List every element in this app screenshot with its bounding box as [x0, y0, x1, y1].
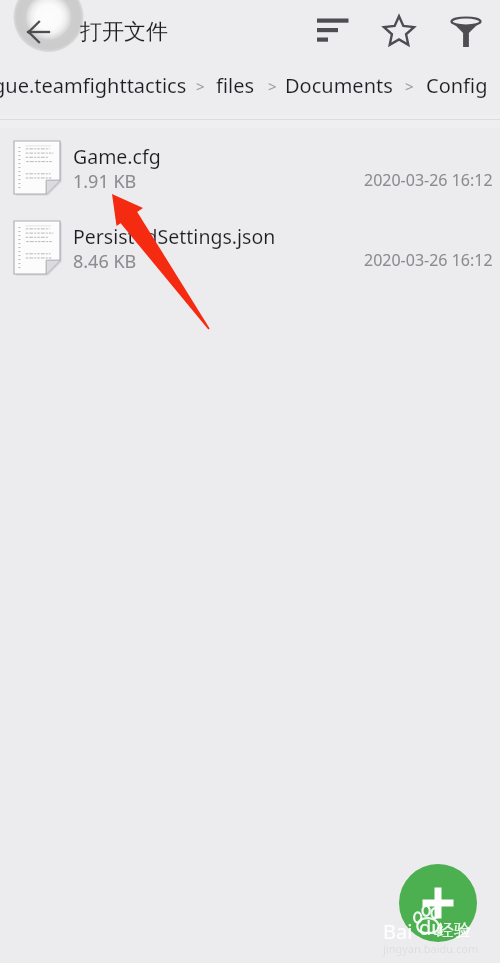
staticText: Config: [426, 72, 488, 99]
staticText: Game.cfg: [73, 143, 161, 170]
button[interactable]: gue.teamfighttactics: [0, 64, 187, 107]
staticText: 经验: [437, 920, 471, 941]
button[interactable]: Documents: [285, 64, 393, 107]
staticText: >: [196, 76, 205, 96]
staticText: 2020-03-26 16:12: [364, 249, 493, 271]
staticText: 打开文件: [80, 18, 168, 46]
button[interactable]: Game.cfg: [0, 128, 500, 208]
button[interactable]: PersistedSettings.json: [0, 208, 500, 288]
button[interactable]: Add: [399, 864, 477, 942]
staticText: gue.teamfighttactics: [0, 72, 187, 99]
button[interactable]: Config: [426, 64, 488, 107]
staticText: files: [216, 72, 255, 99]
staticText: >: [405, 76, 414, 96]
button[interactable]: Filter: [442, 8, 490, 56]
button[interactable]: files: [216, 64, 255, 107]
button[interactable]: Sort: [309, 8, 357, 56]
staticText: Bai: [383, 918, 413, 945]
staticText: 1.91 KB: [73, 169, 137, 194]
staticText: PersistedSettings.json: [73, 223, 276, 250]
staticText: Documents: [285, 72, 393, 99]
staticText: 8.46 KB: [73, 249, 137, 274]
staticText: du: [419, 914, 444, 941]
staticText: >: [268, 76, 277, 96]
staticText: jingyan.baidu.com: [383, 941, 479, 956]
button[interactable]: Favorite: [375, 7, 423, 55]
button[interactable]: Back: [0, 0, 96, 33]
staticText: 2020-03-26 16:12: [364, 169, 493, 191]
